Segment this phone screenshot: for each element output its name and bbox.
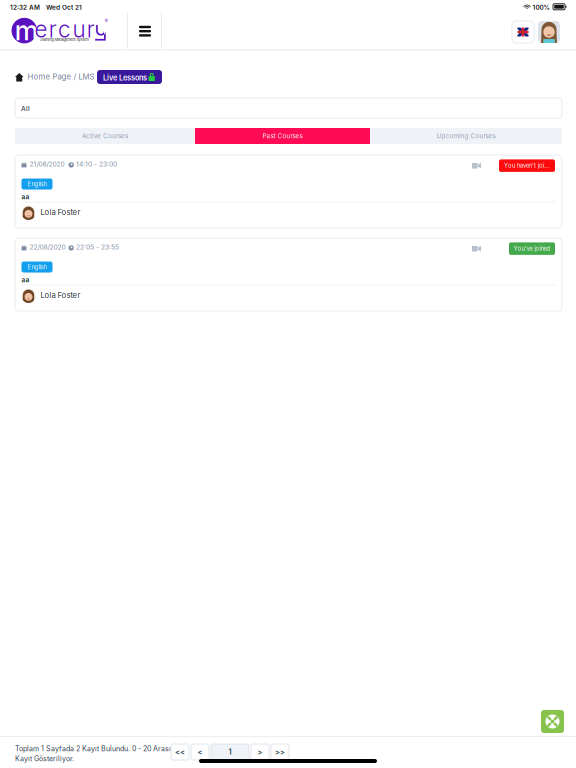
staticText: You've joined (513, 245, 550, 252)
staticText: aa (21, 276, 29, 284)
button[interactable]: Language (512, 21, 534, 43)
staticText: Kayıt Gösteriliyor. (15, 754, 74, 763)
staticText: > (257, 748, 262, 756)
staticText: >> (275, 748, 285, 756)
staticText: 1 (228, 748, 231, 756)
staticText: m (15, 14, 38, 47)
button[interactable]: >> (271, 744, 289, 760)
button[interactable]: > (251, 744, 269, 760)
button[interactable]: < (191, 744, 209, 760)
staticText: aa (21, 193, 29, 201)
staticText: << (175, 748, 185, 756)
staticText: < (197, 748, 202, 756)
staticText: Upcoming Courses (436, 132, 495, 140)
button[interactable]: Upcoming Courses (370, 128, 562, 144)
staticText: Live Lessons (103, 73, 147, 82)
button[interactable]: 1 (211, 744, 249, 760)
button[interactable]: Past Courses (195, 128, 370, 144)
staticText: Wed Oct 21 (46, 4, 82, 11)
staticText: Lola Foster (40, 207, 80, 217)
button[interactable]: Profile (538, 21, 560, 43)
staticText: 12:32 AM (10, 4, 40, 11)
button[interactable]: Active Courses (15, 128, 195, 144)
button[interactable]: Live Lessons (97, 70, 162, 84)
staticText: English (27, 180, 46, 188)
staticText: Active Courses (82, 132, 128, 140)
staticText: All (21, 104, 30, 113)
staticText: c (58, 15, 71, 43)
button[interactable]: Menu (128, 12, 162, 49)
staticText: 22/08/2020 (29, 243, 65, 251)
button[interactable]: 21/08/2020 (15, 155, 562, 228)
staticText: 22:05 - 23:55 (76, 243, 119, 251)
staticText: 21/08/2020 (29, 160, 64, 168)
staticText: English (27, 263, 46, 271)
button[interactable]: 22/08/2020 (15, 238, 562, 311)
staticText: 100% (532, 4, 549, 11)
staticText: 14:10 - 23:00 (76, 160, 117, 168)
staticText: Past Courses (262, 132, 302, 140)
staticText: Home Page / LMS (27, 72, 94, 81)
staticText: Learning Management System (39, 37, 88, 42)
staticText: You haven't joi... (504, 162, 550, 169)
staticText: e (34, 15, 47, 43)
staticText: Toplam 1 Sayfada 2 Kayıt Bulundu. 0 - 20… (15, 744, 171, 753)
staticText: u (72, 15, 85, 43)
button[interactable]: Support (541, 710, 564, 733)
staticText: r (49, 15, 57, 43)
staticText: ® (105, 18, 108, 24)
button[interactable]: << (171, 744, 189, 760)
staticText: Lola Foster (40, 290, 80, 300)
staticText: r (87, 15, 95, 43)
